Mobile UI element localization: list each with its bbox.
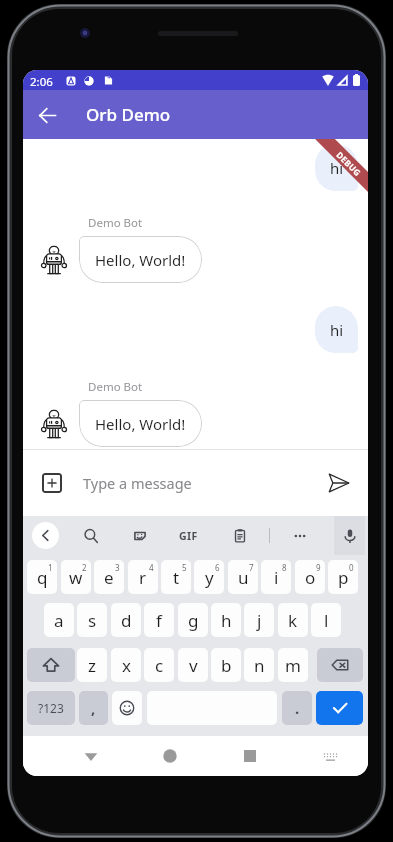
staticText: , [91, 698, 96, 718]
staticText: GIF [179, 529, 198, 543]
staticText: u [238, 566, 249, 589]
staticText: 8 [282, 562, 287, 573]
button[interactable]: n [244, 648, 274, 682]
staticText: c [155, 654, 164, 677]
button[interactable]: More options [285, 516, 315, 555]
button[interactable]: Hello, World! [79, 236, 202, 283]
button[interactable]: e [94, 560, 124, 594]
button[interactable]: hi [315, 144, 358, 191]
button[interactable]: Add attachment [42, 473, 62, 493]
staticText: n [254, 654, 265, 677]
button[interactable]: g [178, 603, 208, 637]
staticText: 7 [249, 562, 254, 573]
staticText: a [54, 609, 64, 632]
button[interactable]: i [261, 560, 291, 594]
button[interactable]: z [77, 648, 107, 682]
staticText: g [188, 609, 199, 632]
staticText: hi [330, 320, 344, 340]
staticText: v [189, 654, 198, 677]
staticText: i [274, 566, 279, 589]
button[interactable]: d [111, 603, 141, 637]
button[interactable]: Home [150, 736, 190, 776]
staticText: q [37, 566, 48, 589]
button[interactable]: Back [71, 736, 111, 776]
staticText: s [88, 609, 97, 632]
button[interactable]: o [295, 560, 325, 594]
button[interactable]: x [111, 648, 141, 682]
staticText: d [121, 609, 132, 632]
staticText: j [257, 609, 262, 632]
button[interactable]: v [178, 648, 208, 682]
button[interactable]: Back [32, 522, 59, 549]
button[interactable]: ?123 [27, 691, 75, 725]
button[interactable]: Stickers [125, 516, 155, 555]
staticText: . [295, 698, 300, 718]
button[interactable]: k [278, 603, 308, 637]
button[interactable]: w [61, 560, 91, 594]
staticText: 2 [82, 562, 87, 573]
staticText: z [88, 654, 96, 677]
button[interactable]: r [128, 560, 158, 594]
button[interactable]: Send [324, 468, 354, 498]
button[interactable]: Emoji [112, 691, 142, 725]
button[interactable]: l [311, 603, 341, 637]
button[interactable]: h [211, 603, 241, 637]
button[interactable]: Search [76, 516, 106, 555]
staticText: ?123 [38, 700, 64, 716]
button[interactable]: Recents [230, 736, 270, 776]
button[interactable]: Keyboard [310, 736, 350, 776]
staticText: t [173, 566, 180, 589]
staticText: y [205, 566, 214, 589]
button[interactable]: u [228, 560, 258, 594]
button[interactable]: y [194, 560, 224, 594]
button[interactable]: p [328, 560, 358, 594]
staticText: e [104, 566, 114, 589]
button[interactable]: t [161, 560, 191, 594]
button[interactable]: , [79, 691, 108, 725]
staticText: l [324, 609, 329, 632]
button[interactable]: b [211, 648, 241, 682]
staticText: k [288, 609, 298, 632]
staticText: Orb Demo [86, 103, 171, 126]
button[interactable]: Enter [316, 691, 363, 725]
staticText: 9 [316, 562, 321, 573]
button[interactable]: Voice input [334, 516, 365, 555]
staticText: 3 [115, 562, 120, 573]
button[interactable]: f [144, 603, 174, 637]
staticText: Hello, World! [95, 414, 186, 434]
button[interactable]: m [278, 648, 308, 682]
staticText: 0 [349, 562, 354, 573]
button[interactable]: a [44, 603, 74, 637]
staticText: p [338, 566, 349, 589]
staticText: 5 [182, 562, 187, 573]
button[interactable]: s [77, 603, 107, 637]
button[interactable]: j [244, 603, 274, 637]
staticText: r [139, 566, 147, 589]
staticText: 1 [48, 562, 53, 573]
staticText: x [122, 654, 131, 677]
staticText: 6 [215, 562, 220, 573]
button[interactable]: q [27, 560, 57, 594]
button[interactable]: . [282, 691, 312, 725]
button[interactable]: Hello, World! [79, 400, 202, 447]
staticText: w [69, 566, 83, 589]
staticText: hi [330, 158, 344, 178]
button[interactable]: Back [23, 91, 71, 139]
staticText: 2:06 [30, 74, 53, 90]
button[interactable]: Backspace [317, 648, 363, 682]
button[interactable]: Shift [27, 648, 75, 682]
staticText: Type a message [83, 473, 192, 493]
button[interactable]: c [144, 648, 174, 682]
button[interactable]: Clipboard [225, 516, 255, 555]
staticText: DEBUG [334, 149, 364, 179]
staticText: b [221, 654, 232, 677]
staticText: 4 [149, 562, 154, 573]
button[interactable]: hi [315, 306, 358, 353]
staticText: h [221, 609, 232, 632]
staticText: Hello, World! [95, 250, 186, 270]
button[interactable]: GIF [173, 516, 203, 555]
staticText: Demo Bot [88, 215, 143, 231]
staticText: Demo Bot [88, 379, 143, 395]
staticText: o [305, 566, 316, 589]
